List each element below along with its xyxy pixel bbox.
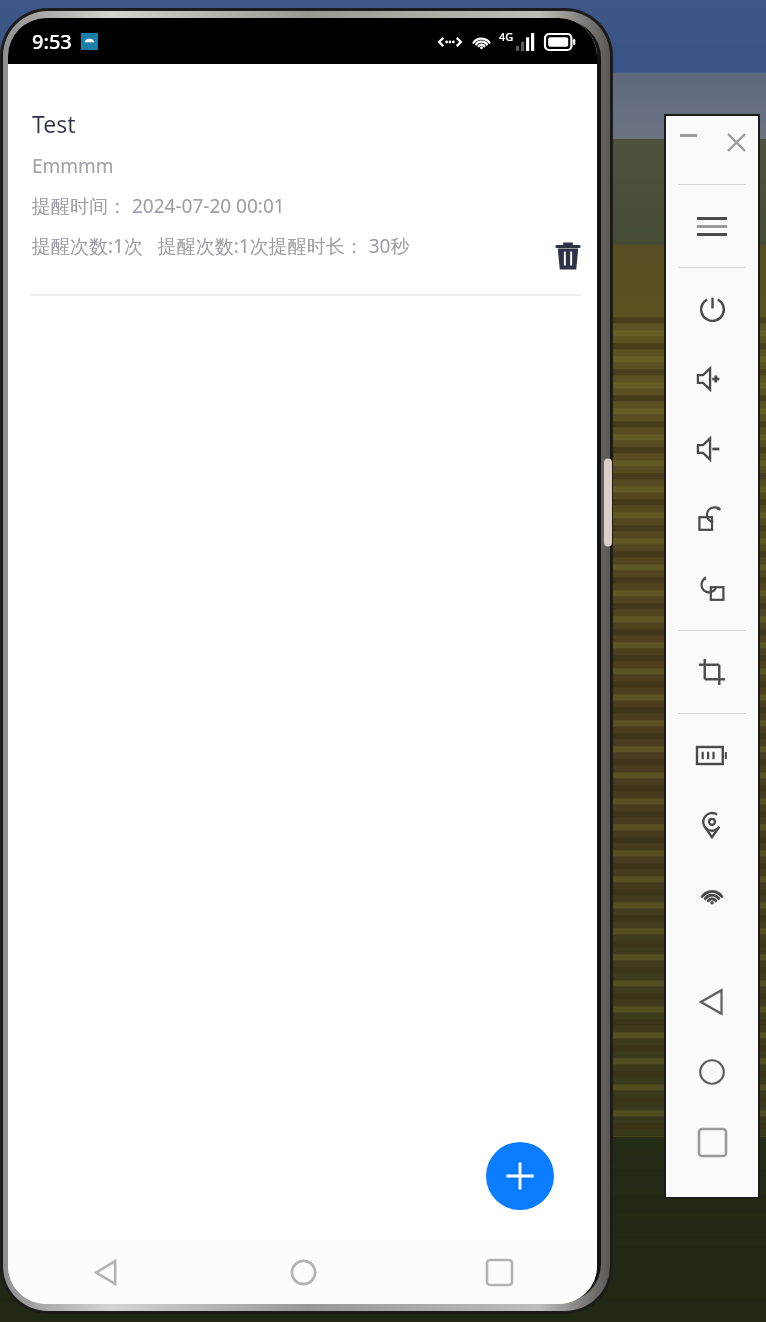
staticText: Emmmm xyxy=(32,153,114,179)
button[interactable]: Recent apps xyxy=(664,1107,760,1177)
button[interactable]: Rotate left xyxy=(664,554,760,624)
staticText: Test xyxy=(32,108,76,139)
button[interactable]: Take screenshot xyxy=(664,637,760,707)
button[interactable]: Power xyxy=(664,274,760,344)
button[interactable]: Volume down xyxy=(664,414,760,484)
button[interactable]: Back xyxy=(664,967,760,1037)
button[interactable]: Home xyxy=(205,1240,401,1304)
button[interactable]: Close xyxy=(712,134,760,151)
staticText: 4G xyxy=(499,29,514,44)
staticText: 提醒次数:1次 提醒次数:1次提醒时长： 30秒 xyxy=(32,233,410,259)
button[interactable]: Test xyxy=(8,64,597,296)
button[interactable]: Battery xyxy=(664,720,760,790)
staticText: 提醒时间： 2024-07-20 00:01 xyxy=(32,193,285,219)
button[interactable]: Delete reminder xyxy=(544,232,592,280)
button[interactable]: Add reminder xyxy=(486,1142,554,1210)
button[interactable]: Location xyxy=(664,790,760,860)
button[interactable]: Volume up xyxy=(664,344,760,414)
button[interactable]: Wi-Fi xyxy=(664,860,760,930)
button[interactable]: Back xyxy=(8,1240,205,1304)
button[interactable]: Recent apps xyxy=(401,1240,597,1304)
staticText: 9:53 xyxy=(32,28,72,55)
button[interactable]: Minimise xyxy=(664,134,712,137)
button[interactable]: Menu xyxy=(664,191,760,261)
button[interactable]: Home xyxy=(664,1037,760,1107)
button[interactable]: Rotate right xyxy=(664,484,760,554)
